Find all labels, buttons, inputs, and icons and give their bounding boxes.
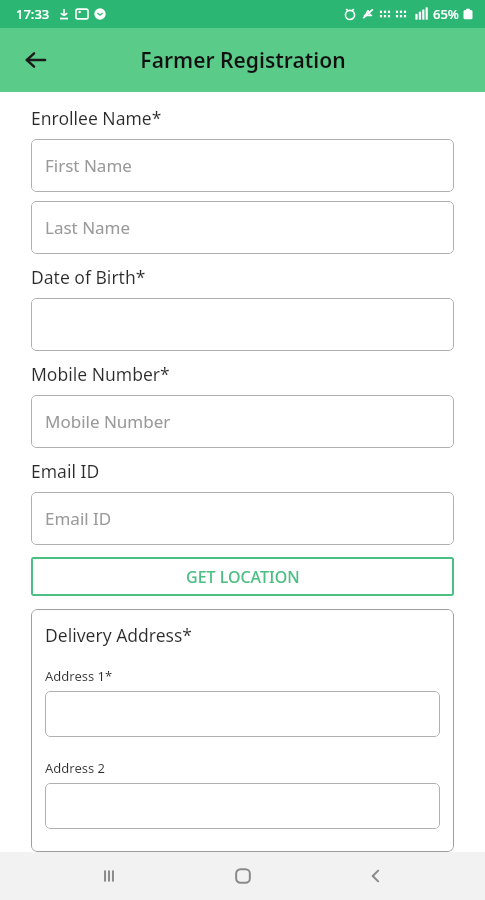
button[interactable]: Back — [352, 852, 400, 900]
button[interactable]: Recent apps — [85, 852, 133, 900]
button[interactable]: Mobile Number — [31, 395, 454, 448]
staticText: Delivery Address* — [45, 623, 192, 647]
staticText: Address 2 — [45, 759, 106, 777]
staticText: Address 1* — [45, 667, 113, 685]
staticText: Email ID — [45, 507, 112, 530]
button[interactable]: Email ID — [31, 492, 454, 545]
staticText: 17:33 — [16, 5, 50, 23]
button[interactable]: Home — [219, 852, 267, 900]
button[interactable]: GET LOCATION — [31, 557, 454, 596]
button[interactable]: First Name — [31, 139, 454, 192]
staticText: Mobile Number* — [31, 362, 170, 386]
button[interactable]: Last Name — [31, 201, 454, 254]
staticText: Mobile Number — [45, 410, 171, 433]
staticText: Date of Birth* — [31, 265, 146, 289]
staticText: First Name — [45, 154, 132, 177]
staticText: Last Name — [45, 216, 131, 239]
staticText: Enrollee Name* — [31, 106, 162, 130]
staticText: Farmer Registration — [140, 46, 346, 75]
button[interactable] — [31, 298, 454, 351]
button[interactable]: Back — [14, 38, 58, 82]
staticText: 65% — [433, 5, 459, 23]
button[interactable] — [45, 783, 440, 829]
staticText: Email ID — [31, 459, 100, 483]
staticText: GET LOCATION — [186, 566, 300, 588]
button[interactable] — [45, 691, 440, 737]
